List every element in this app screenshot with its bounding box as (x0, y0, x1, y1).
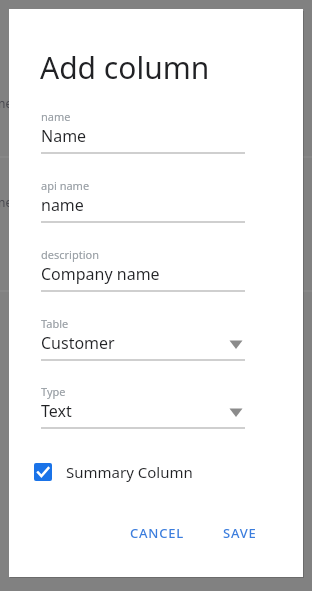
button[interactable]: Table dropdown (41, 315, 245, 371)
staticText: CANCEL (130, 524, 185, 542)
staticText: ne (0, 194, 13, 210)
staticText: SAVE (223, 524, 257, 542)
staticText: ne (0, 95, 13, 111)
button[interactable]: Summary Column (34, 456, 234, 488)
staticText: name (41, 109, 71, 124)
button[interactable]: api name (41, 177, 245, 233)
staticText: name (41, 194, 84, 216)
staticText: Company name (41, 263, 160, 285)
staticText: description (41, 247, 99, 262)
staticText: Table (41, 316, 69, 331)
staticText: Type (41, 384, 66, 399)
staticText: Text (41, 400, 72, 422)
staticText: api name (41, 178, 90, 193)
staticText: Add column (40, 47, 210, 88)
button[interactable]: SAVE (215, 516, 265, 550)
button[interactable]: name (41, 108, 245, 164)
button[interactable]: Type dropdown (41, 383, 245, 439)
button[interactable]: description (41, 246, 245, 302)
staticText: Summary Column (66, 462, 193, 482)
staticText: Name (41, 125, 87, 147)
staticText: Customer (41, 332, 115, 354)
button[interactable]: CANCEL (122, 516, 193, 550)
